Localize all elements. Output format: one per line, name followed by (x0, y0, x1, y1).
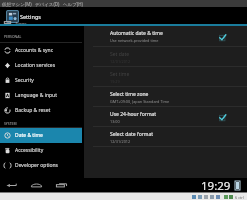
staticText: Select date format (110, 131, 154, 138)
staticText: 19:29 (201, 178, 231, 193)
staticText: GMT+09:00, Japan Standard Time (110, 99, 170, 104)
button[interactable]: Back (4, 178, 19, 193)
staticText: Use network-provided time (110, 38, 159, 43)
staticText: Use 24-hour format (110, 111, 157, 118)
staticText: PERSONAL (4, 34, 22, 39)
staticText: Set time (110, 71, 130, 78)
staticText: 13:00 (110, 119, 120, 124)
button[interactable]: Recent apps (54, 178, 69, 193)
button[interactable]: Backup & reset (0, 103, 82, 118)
button[interactable]: Automatic date & time (218, 33, 226, 41)
button[interactable]: Select date format (84, 127, 247, 147)
staticText: 12/31/2012 (110, 139, 131, 144)
button[interactable]: Set time (84, 67, 247, 87)
staticText: Accessibility (15, 147, 44, 154)
button[interactable]: Set date (84, 47, 247, 67)
staticText: Security (15, 77, 34, 84)
staticText: Set date (110, 51, 130, 58)
button[interactable]: Location services (0, 58, 82, 73)
staticText: 6 ctrl (235, 195, 244, 200)
button[interactable]: Accessibility (0, 143, 82, 158)
staticText: Select time zone (110, 91, 149, 98)
staticText: Language & input (15, 92, 57, 99)
staticText: Automatic date & time (110, 30, 163, 37)
staticText: Accounts & sync (15, 47, 54, 54)
staticText: 12/01/2012 (110, 59, 131, 64)
button[interactable]: Select time zone (84, 87, 247, 107)
staticText: Settings (20, 13, 41, 20)
button[interactable]: Use 24-hour format (84, 107, 247, 127)
staticText: Developer options (15, 162, 59, 169)
button[interactable]: デバイス(D) (35, 1, 60, 7)
staticText: SYSTEM (4, 121, 17, 126)
button[interactable]: Accounts & sync (0, 43, 82, 58)
button[interactable]: 仮想マシン(M) (2, 1, 32, 7)
button[interactable]: Automatic date & time (84, 26, 247, 47)
button[interactable]: Use 24-hour format (218, 113, 226, 121)
button[interactable]: Developer options (0, 158, 82, 173)
staticText: Date & time (15, 132, 43, 139)
button[interactable]: Home (29, 178, 44, 193)
button[interactable]: ヘルプ(H) (63, 1, 83, 7)
staticText: Apps (15, 21, 27, 24)
button[interactable]: Date & time (0, 128, 82, 143)
staticText: 19:29 (110, 79, 120, 84)
staticText: Location services (15, 62, 56, 69)
button[interactable]: Language & input (0, 88, 82, 103)
staticText: Backup & reset (15, 107, 51, 114)
button[interactable]: Security (0, 73, 82, 88)
